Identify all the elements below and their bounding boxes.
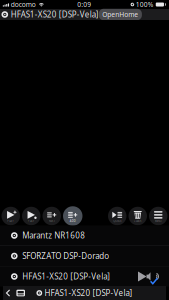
staticText: 100% — [136, 0, 154, 9]
button[interactable]: Clear queue — [128, 207, 147, 225]
staticText: SFORZATO DSP-Dorado — [22, 251, 109, 261]
button[interactable]: Play now — [1, 207, 20, 225]
staticText: OpenHome — [102, 10, 138, 19]
staticText: QUEUE — [113, 219, 121, 223]
button[interactable]: Play next — [42, 207, 61, 225]
staticText: HFAS1-XS20 [DSP-Vela] — [22, 271, 110, 282]
button[interactable]: Marantz NR1608 — [0, 225, 169, 245]
button[interactable]: Play queue — [108, 207, 126, 225]
staticText: PLAY — [7, 219, 14, 223]
button[interactable]: Play — [22, 207, 40, 225]
staticText: PLAY — [28, 219, 35, 223]
staticText: NEXT — [49, 219, 55, 223]
button[interactable]: OpenHome — [99, 9, 142, 20]
button[interactable]: More — [149, 207, 167, 225]
button[interactable]: Back — [3, 285, 13, 300]
staticText: MENU — [155, 219, 162, 223]
button[interactable]: SFORZATO DSP-Dorado — [0, 246, 169, 266]
staticText: ADD — [70, 219, 76, 223]
staticText: 0:09 — [77, 0, 91, 9]
staticText: Marantz NR1608 — [22, 230, 85, 241]
staticText: HFAS1-XS20 [DSP-Vela] — [45, 288, 133, 298]
button[interactable]: Add to queue — [63, 206, 82, 226]
staticText: CLEAR — [134, 219, 142, 223]
staticText: docomo — [11, 0, 36, 9]
staticText: HFAS1-XS20 [DSP-Vela] — [11, 9, 99, 20]
button[interactable]: HFAS1-XS20 [DSP-Vela] — [0, 266, 169, 286]
button[interactable]: Now playing — [13, 286, 28, 300]
